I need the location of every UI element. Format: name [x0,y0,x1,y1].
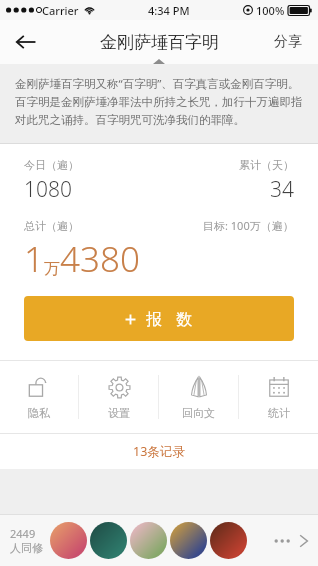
staticText: 2449 [10,526,36,541]
staticText: 1 [24,235,44,283]
staticText: Carrier [42,3,79,18]
staticText: 总计（遍） [24,219,79,233]
staticText: 万 [44,259,60,279]
staticText: 100% [256,3,285,18]
staticText: 隐私 [28,406,50,420]
staticText: 1080 [24,175,72,204]
staticText: 设置 [108,406,130,420]
button[interactable]: 隐私 [0,361,78,433]
button[interactable]: 分享 [268,27,308,57]
button[interactable]: 2449 [0,515,318,566]
staticText: 34 [270,175,294,204]
other: More participants [298,532,310,550]
staticText: 金刚萨埵百字明 [100,32,219,53]
staticText: 今日（遍） [24,158,79,172]
button[interactable]: 统计 [239,361,318,433]
staticText: 金刚萨埵百字明又称“百字明”、百字真言或金刚百字明。百字明是金刚萨埵净罪法中所持… [15,76,303,128]
staticText: 报 数 [146,308,195,330]
button[interactable]: 设置 [79,361,158,433]
staticText: 4:34 PM [148,3,190,18]
staticText: 人同修 [10,541,43,555]
staticText: 4380 [60,235,140,283]
staticText: 累计（天） [239,158,294,172]
staticText: 目标: 100万（遍） [203,218,294,233]
staticText: 统计 [268,406,290,420]
staticText: 13条记录 [133,443,185,460]
button[interactable]: 13条记录 [0,434,318,469]
button[interactable]: Back [4,20,48,64]
staticText: 分享 [274,33,302,51]
staticText: 回向文 [182,406,215,420]
button[interactable]: 报 数 [24,296,294,341]
button[interactable]: 回向文 [159,361,238,433]
